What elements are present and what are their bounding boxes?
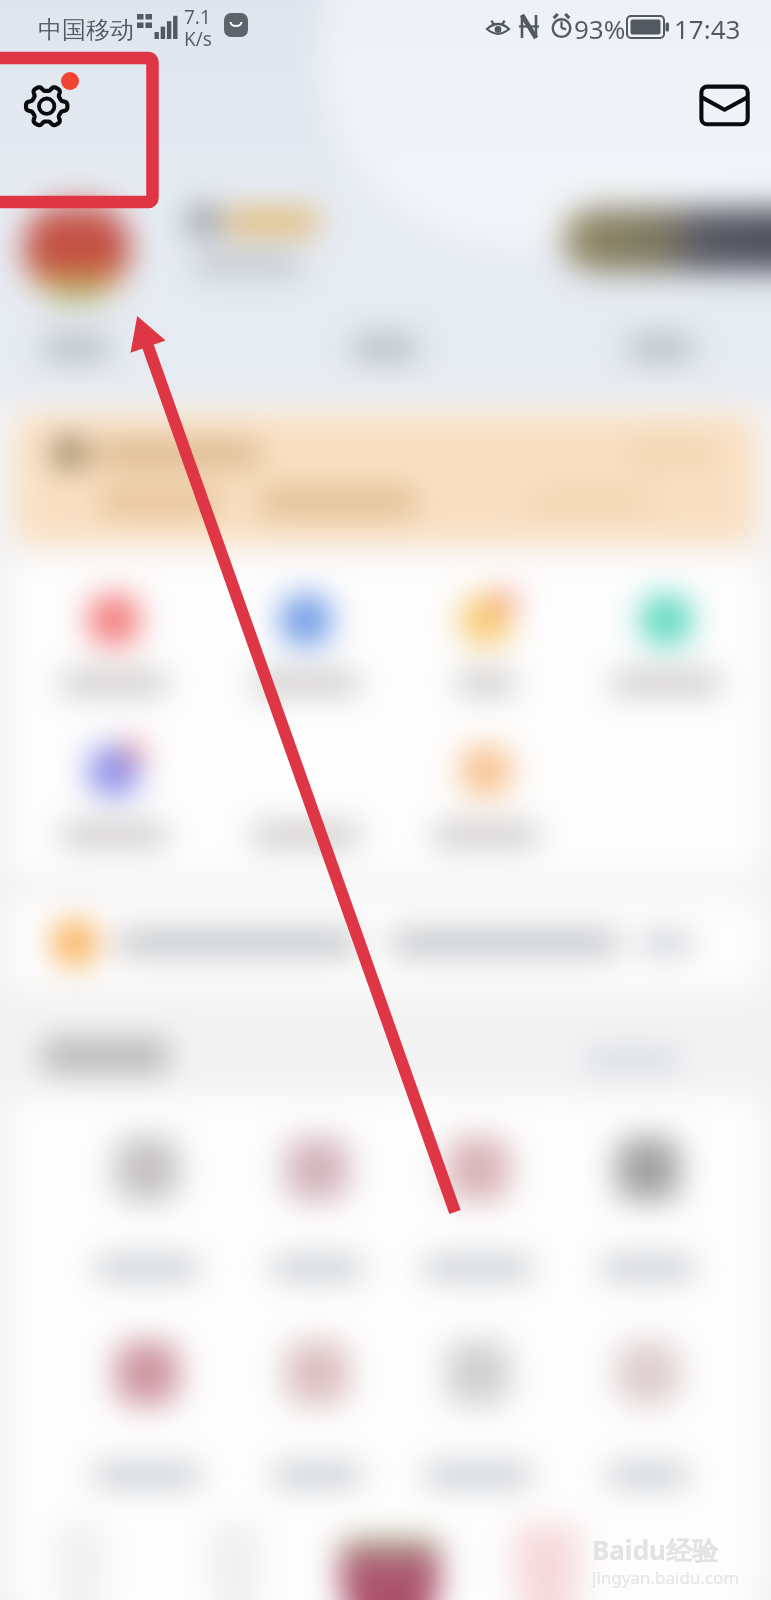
button[interactable]: Messages bbox=[698, 82, 752, 128]
button[interactable]: Settings bbox=[18, 77, 76, 135]
staticText: Baidu经验 bbox=[592, 1532, 718, 1568]
staticText: 93% bbox=[574, 11, 626, 46]
staticText: jingyan.baidu.com bbox=[592, 1566, 740, 1589]
staticText: K/s bbox=[184, 26, 212, 52]
staticText: 7.1 bbox=[184, 4, 211, 30]
staticText: 17:43 bbox=[674, 11, 741, 46]
staticText: 中国移动 bbox=[38, 15, 134, 45]
